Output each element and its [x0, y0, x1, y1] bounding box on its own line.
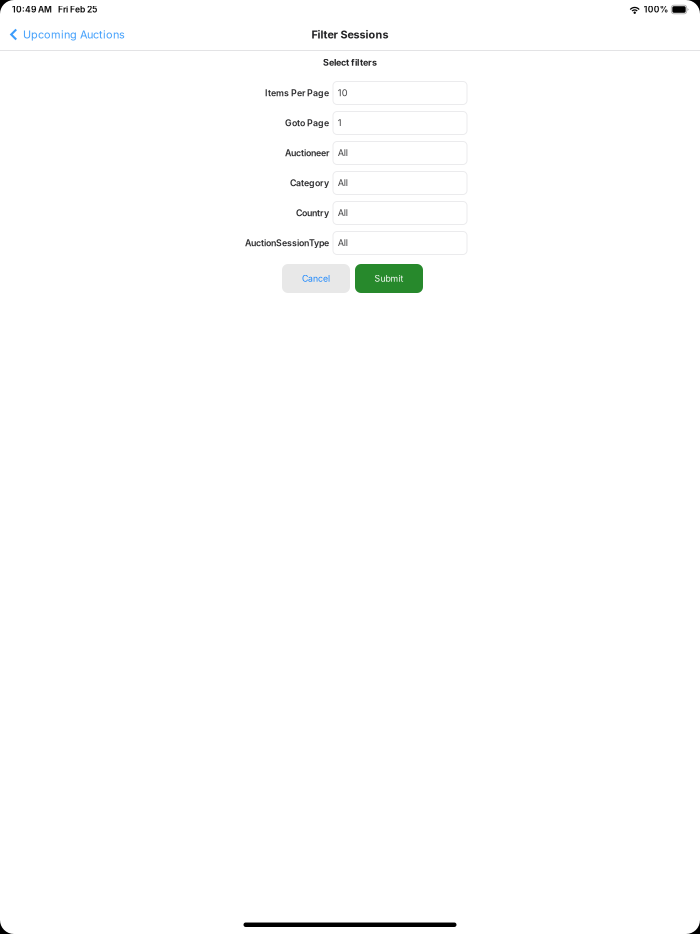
staticText: 10:49 AM: [12, 4, 52, 15]
staticText: All: [338, 207, 348, 218]
staticText: Submit: [374, 273, 403, 284]
staticText: 1: [338, 117, 342, 128]
staticText: Country: [296, 208, 329, 218]
staticText: Filter Sessions: [311, 28, 388, 41]
staticText: All: [338, 177, 348, 188]
staticText: Fri Feb 25: [58, 4, 97, 15]
staticText: Auctioneer: [285, 148, 329, 158]
button[interactable]: All: [333, 201, 467, 224]
staticText: 100%: [644, 4, 669, 15]
staticText: AuctionSessionType: [245, 238, 329, 248]
button[interactable]: All: [333, 231, 467, 254]
staticText: Items Per Page: [265, 88, 329, 98]
staticText: Cancel: [302, 273, 330, 284]
staticText: All: [338, 147, 348, 158]
staticText: Goto Page: [285, 118, 329, 128]
button[interactable]: Upcoming Auctions: [0, 19, 133, 50]
staticText: Select filters: [323, 57, 377, 68]
staticText: All: [338, 237, 348, 248]
staticText: Category: [290, 178, 329, 188]
button[interactable]: Cancel: [282, 264, 350, 293]
staticText: 10: [338, 87, 348, 98]
button[interactable]: Submit: [355, 264, 423, 293]
button[interactable]: 1: [333, 111, 467, 134]
staticText: Upcoming Auctions: [23, 28, 125, 41]
button[interactable]: All: [333, 171, 467, 194]
button[interactable]: 10: [333, 81, 467, 104]
button[interactable]: All: [333, 141, 467, 164]
